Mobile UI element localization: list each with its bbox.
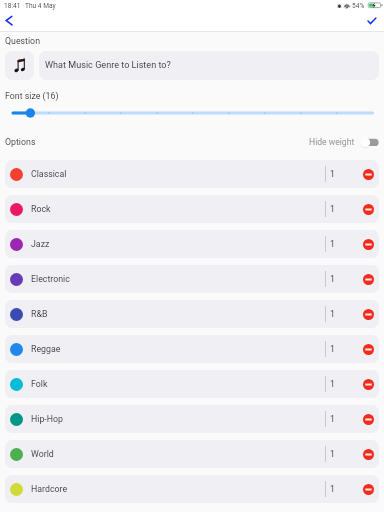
button[interactable]: Remove [360,446,376,462]
button[interactable]: R&B [5,300,379,328]
button[interactable]: Hardcore [5,475,379,503]
staticText: 18:41 [4,2,21,10]
staticText: Hide weight [309,137,355,147]
staticText: 1 [330,204,335,214]
staticText: R&B [31,309,48,319]
button[interactable]: What Music Genre to Listen to? [39,51,379,80]
button[interactable]: Jazz [5,230,379,258]
staticText: Classical [31,169,67,179]
button[interactable]: Back [1,13,17,29]
button[interactable]: Font size slider [5,106,379,120]
staticText: Jazz [31,239,50,249]
staticText: Rock [31,204,51,214]
button[interactable]: Question icon [5,51,34,80]
button[interactable]: Done [364,13,380,29]
staticText: 1 [330,274,335,284]
staticText: 54% [352,2,365,10]
button[interactable]: Remove [360,236,376,252]
staticText: Folk [31,379,48,389]
staticText: 1 [330,379,335,389]
staticText: Hip-Hop [31,414,64,424]
button[interactable]: Rock [5,195,379,223]
staticText: 1 [330,449,335,459]
staticText: 1 [330,309,335,319]
other: Hide weight toggle [360,137,379,147]
staticText: 1 [330,169,335,179]
button[interactable]: Remove [360,306,376,322]
staticText: Question [5,36,40,46]
staticText: 1 [330,414,335,424]
button[interactable]: Remove [360,166,376,182]
button[interactable]: Reggae [5,335,379,363]
staticText: 1 [330,484,335,494]
button[interactable]: Electronic [5,265,379,293]
button[interactable]: Remove [360,341,376,357]
button[interactable]: Folk [5,370,379,398]
staticText: Electronic [31,274,70,284]
button[interactable]: Remove [360,271,376,287]
button[interactable]: Remove [360,201,376,217]
staticText: Thu 4 May [25,2,56,10]
staticText: World [31,449,54,459]
staticText: Font size (16) [5,91,59,101]
staticText: 1 [330,239,335,249]
button[interactable]: Hip-Hop [5,405,379,433]
button[interactable]: Remove [360,376,376,392]
button[interactable]: Remove [360,411,376,427]
staticText: What Music Genre to Listen to? [45,60,171,71]
staticText: Hardcore [31,484,68,494]
staticText: Reggae [31,344,61,354]
staticText: Options [5,137,36,147]
button[interactable]: Classical [5,160,379,188]
button[interactable]: Hide weight [309,136,379,148]
button[interactable]: World [5,440,379,468]
staticText: 1 [330,344,335,354]
button[interactable]: Remove [360,481,376,497]
